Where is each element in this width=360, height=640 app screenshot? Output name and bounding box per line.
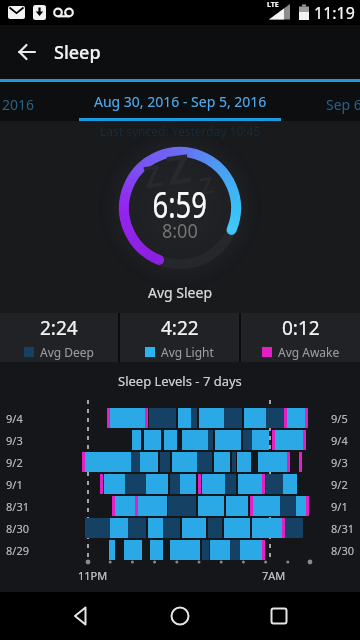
button[interactable]: Sep 6 <box>320 82 360 121</box>
staticText: 9/5 <box>331 411 348 426</box>
staticText: 9/1 <box>331 499 348 514</box>
staticText: Avg Light <box>161 344 214 360</box>
button[interactable] <box>160 596 200 636</box>
staticText: 2016 <box>2 95 35 114</box>
button[interactable]: 2016 <box>0 82 60 121</box>
staticText: 9/2 <box>331 477 348 492</box>
staticText: 11PM <box>78 568 108 583</box>
staticText: 9/4 <box>6 411 23 426</box>
button[interactable] <box>259 596 299 636</box>
staticText: Sleep <box>54 40 101 65</box>
staticText: Aug 30, 2016 - Sep 5, 2016 <box>94 92 267 111</box>
staticText: Avg Awake <box>278 344 340 360</box>
staticText: Sep 6 <box>326 95 360 114</box>
staticText: 9/3 <box>331 455 348 470</box>
staticText: 9/2 <box>6 455 23 470</box>
staticText: 8/31 <box>6 499 29 514</box>
staticText: 4:22 <box>161 315 199 341</box>
button[interactable] <box>61 596 101 636</box>
staticText: Sleep Levels - 7 days <box>118 372 242 390</box>
staticText: Last synced: Yesterday 10:45 <box>100 123 261 139</box>
staticText: Z <box>197 168 217 201</box>
staticText: 9/3 <box>6 433 23 448</box>
staticText: 2:24 <box>40 315 78 341</box>
button[interactable]: 4:22 <box>120 313 239 362</box>
staticText: LTE <box>267 0 279 10</box>
staticText: 8/30 <box>331 543 354 558</box>
staticText: Z <box>163 140 195 196</box>
staticText: 7AM <box>262 568 286 583</box>
staticText: 0:12 <box>282 315 320 341</box>
staticText: 8/31 <box>331 521 354 536</box>
button[interactable]: 2:24 <box>0 313 118 362</box>
button[interactable]: 0:12 <box>241 313 360 362</box>
staticText: 11:19 <box>314 2 355 24</box>
button[interactable] <box>0 25 54 79</box>
staticText: Z <box>141 154 165 197</box>
staticText: Avg Deep <box>40 344 94 360</box>
staticText: Avg Sleep <box>148 283 213 302</box>
staticText: 6:59 <box>153 178 207 228</box>
staticText: 8/29 <box>6 543 29 558</box>
button[interactable]: Aug 30, 2016 - Sep 5, 2016 <box>94 92 267 111</box>
staticText: 8:00 <box>162 218 198 244</box>
staticText: 8/30 <box>6 521 29 536</box>
staticText: 9/1 <box>6 477 23 492</box>
staticText: 9/4 <box>331 433 348 448</box>
